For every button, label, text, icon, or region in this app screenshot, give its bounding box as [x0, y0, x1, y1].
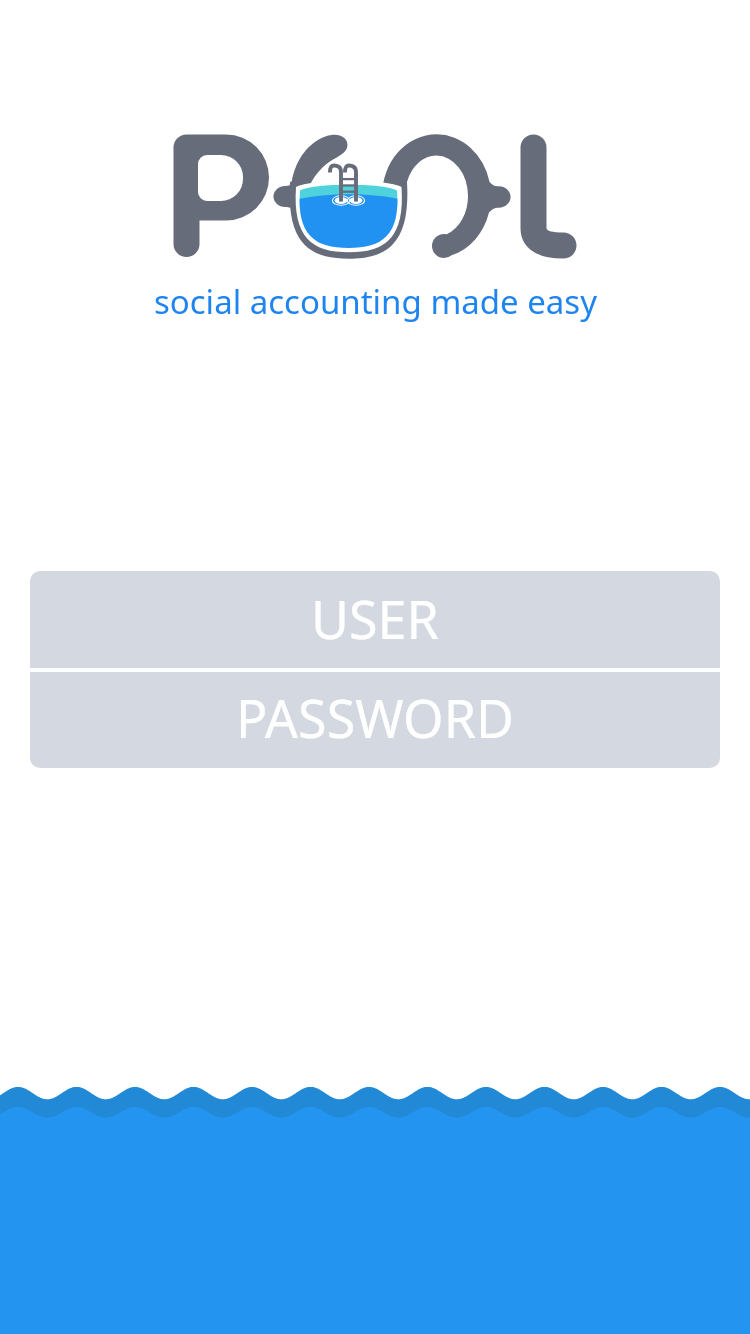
staticText: USER [311, 583, 439, 654]
button[interactable]: PASSWORD [30, 672, 720, 768]
button[interactable]: USER [30, 571, 720, 668]
staticText: social accounting made easy [154, 279, 597, 324]
staticText: PASSWORD [236, 682, 514, 753]
